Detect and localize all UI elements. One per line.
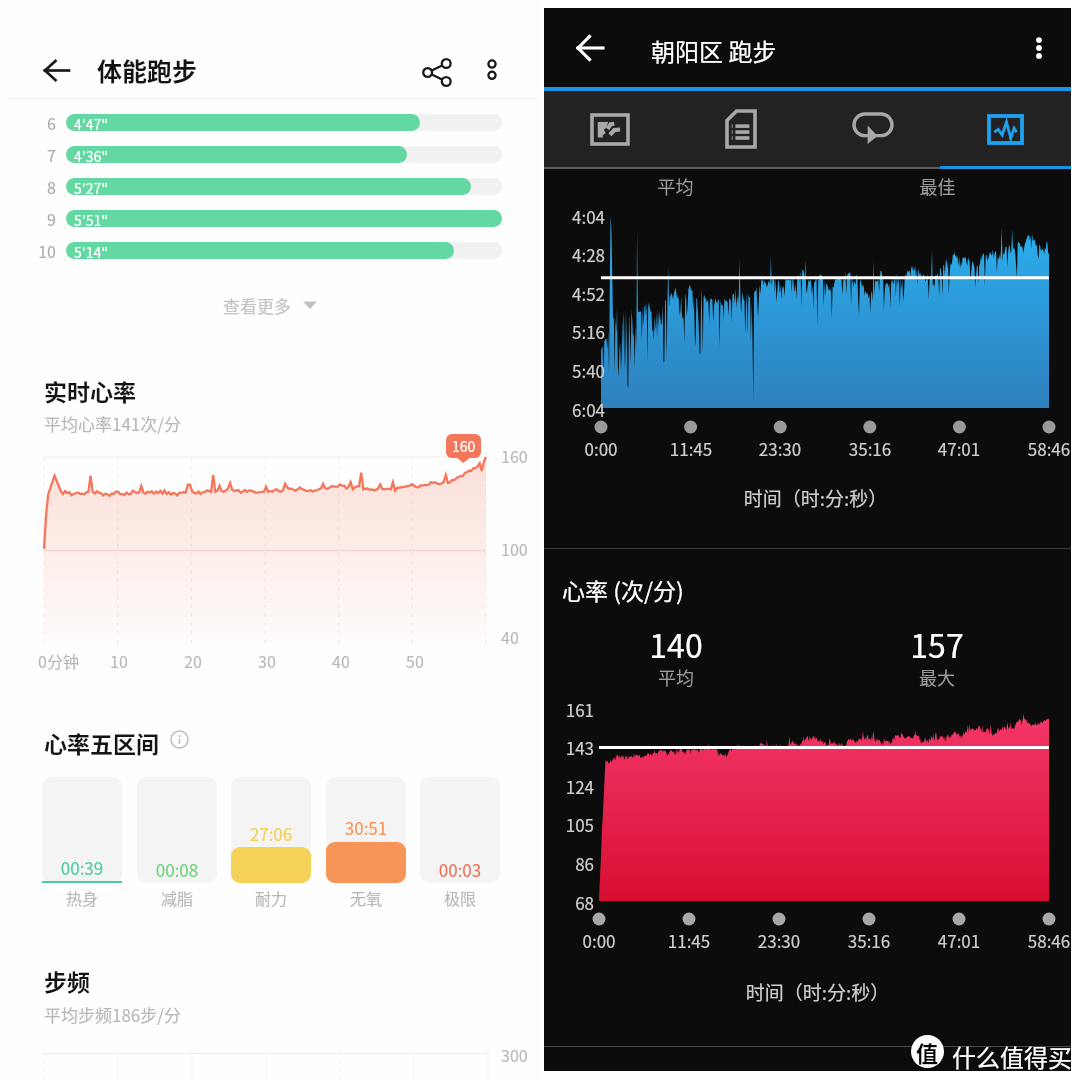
button[interactable]: 7: [0, 138, 540, 170]
staticText: 10: [22, 239, 56, 262]
staticText: 6:04: [557, 397, 605, 422]
staticText: 减脂: [137, 886, 217, 909]
staticText: 心率五区间: [44, 726, 159, 759]
button[interactable]: Share: [413, 48, 461, 96]
button[interactable]: 27:06: [231, 777, 311, 883]
button[interactable]: Map: [544, 91, 675, 167]
staticText: 4:52: [557, 281, 605, 306]
button[interactable]: More options: [1014, 23, 1064, 73]
staticText: 平均: [610, 173, 741, 199]
button[interactable]: 8: [0, 170, 540, 202]
staticText: 00:03: [420, 857, 500, 882]
staticText: 11:45: [654, 928, 724, 953]
staticText: 50: [395, 649, 435, 672]
staticText: 58:46: [1014, 436, 1080, 461]
staticText: 47:01: [924, 928, 994, 953]
button[interactable]: 体能跑步: [97, 52, 198, 88]
staticText: 耐力: [231, 886, 311, 909]
button[interactable]: 00:39: [42, 777, 122, 883]
staticText: 10: [99, 649, 139, 672]
button[interactable]: 9: [0, 202, 540, 234]
staticText: 心率 (次/分): [562, 573, 684, 606]
button[interactable]: 10: [0, 234, 540, 266]
staticText: 5'14": [74, 242, 108, 259]
staticText: 20: [173, 649, 213, 672]
button[interactable]: Details: [675, 91, 807, 167]
staticText: 8: [22, 175, 56, 198]
staticText: 时间（时:分:秒）: [552, 484, 1079, 512]
button[interactable]: 30:51: [326, 777, 406, 883]
staticText: 4:04: [557, 204, 605, 229]
button[interactable]: More options: [470, 48, 514, 92]
staticText: 140: [610, 621, 742, 667]
staticText: 4'47": [74, 114, 108, 131]
button[interactable]: Back: [568, 26, 612, 70]
button[interactable]: 查看更多: [0, 288, 540, 322]
staticText: 9: [22, 207, 56, 230]
button[interactable]: 00:08: [137, 777, 217, 883]
staticText: 步频（步/分）: [562, 1065, 710, 1080]
staticText: 11:45: [656, 436, 726, 461]
button[interactable]: 6: [0, 106, 540, 138]
staticText: 5'27": [74, 178, 108, 195]
staticText: 23:30: [744, 928, 814, 953]
staticText: 时间（时:分:秒）: [554, 978, 1080, 1006]
staticText: 68: [554, 890, 594, 915]
staticText: 步频: [44, 964, 90, 997]
staticText: 平均步频186步/分: [44, 1002, 181, 1027]
button[interactable]: 00:03: [420, 777, 500, 883]
staticText: 35:16: [834, 928, 904, 953]
staticText: 157: [871, 621, 1003, 667]
staticText: 124: [554, 774, 594, 799]
staticText: 5'51": [74, 210, 108, 227]
staticText: 100: [501, 537, 528, 560]
staticText: 平均: [610, 664, 742, 690]
staticText: 6: [22, 111, 56, 134]
staticText: 极限: [420, 886, 500, 909]
staticText: 0:00: [564, 928, 634, 953]
staticText: 4'36": [74, 146, 108, 163]
staticText: 平均心率141次/分: [44, 411, 181, 436]
button[interactable]: 朝阳区 跑步: [651, 33, 777, 68]
staticText: 无氧: [326, 886, 406, 909]
staticText: 161: [554, 697, 594, 722]
staticText: 5:16: [557, 319, 605, 344]
staticText: 查看更多: [223, 293, 291, 318]
staticText: 值: [916, 1036, 939, 1068]
staticText: 160: [452, 436, 476, 456]
staticText: 86: [554, 851, 594, 876]
staticText: 27:06: [231, 821, 311, 846]
staticText: 30:51: [326, 815, 406, 840]
staticText: 30: [247, 649, 287, 672]
staticText: 7: [22, 143, 56, 166]
staticText: 160: [501, 444, 528, 467]
staticText: 105: [554, 812, 594, 837]
staticText: 0:00: [566, 436, 636, 461]
staticText: 00:39: [42, 855, 122, 880]
staticText: 最佳: [872, 173, 1003, 199]
staticText: 23:30: [745, 436, 815, 461]
staticText: 143: [554, 735, 594, 760]
staticText: 40: [321, 649, 361, 672]
button[interactable]: Laps: [807, 91, 939, 167]
staticText: 4:28: [557, 242, 605, 267]
staticText: 实时心率: [44, 374, 136, 407]
staticText: 5:40: [557, 358, 605, 383]
staticText: 300: [501, 1043, 528, 1066]
staticText: 热身: [42, 886, 122, 909]
button[interactable]: Back: [38, 52, 74, 88]
staticText: 47:01: [924, 436, 994, 461]
button[interactable]: Charts: [939, 91, 1071, 167]
staticText: 什么值得买: [952, 1039, 1072, 1074]
staticText: 35:16: [835, 436, 905, 461]
staticText: 40: [501, 625, 519, 648]
staticText: 最大: [871, 664, 1003, 690]
staticText: 0分钟: [38, 649, 79, 672]
staticText: 58:46: [1014, 928, 1080, 953]
staticText: 00:08: [137, 857, 217, 882]
